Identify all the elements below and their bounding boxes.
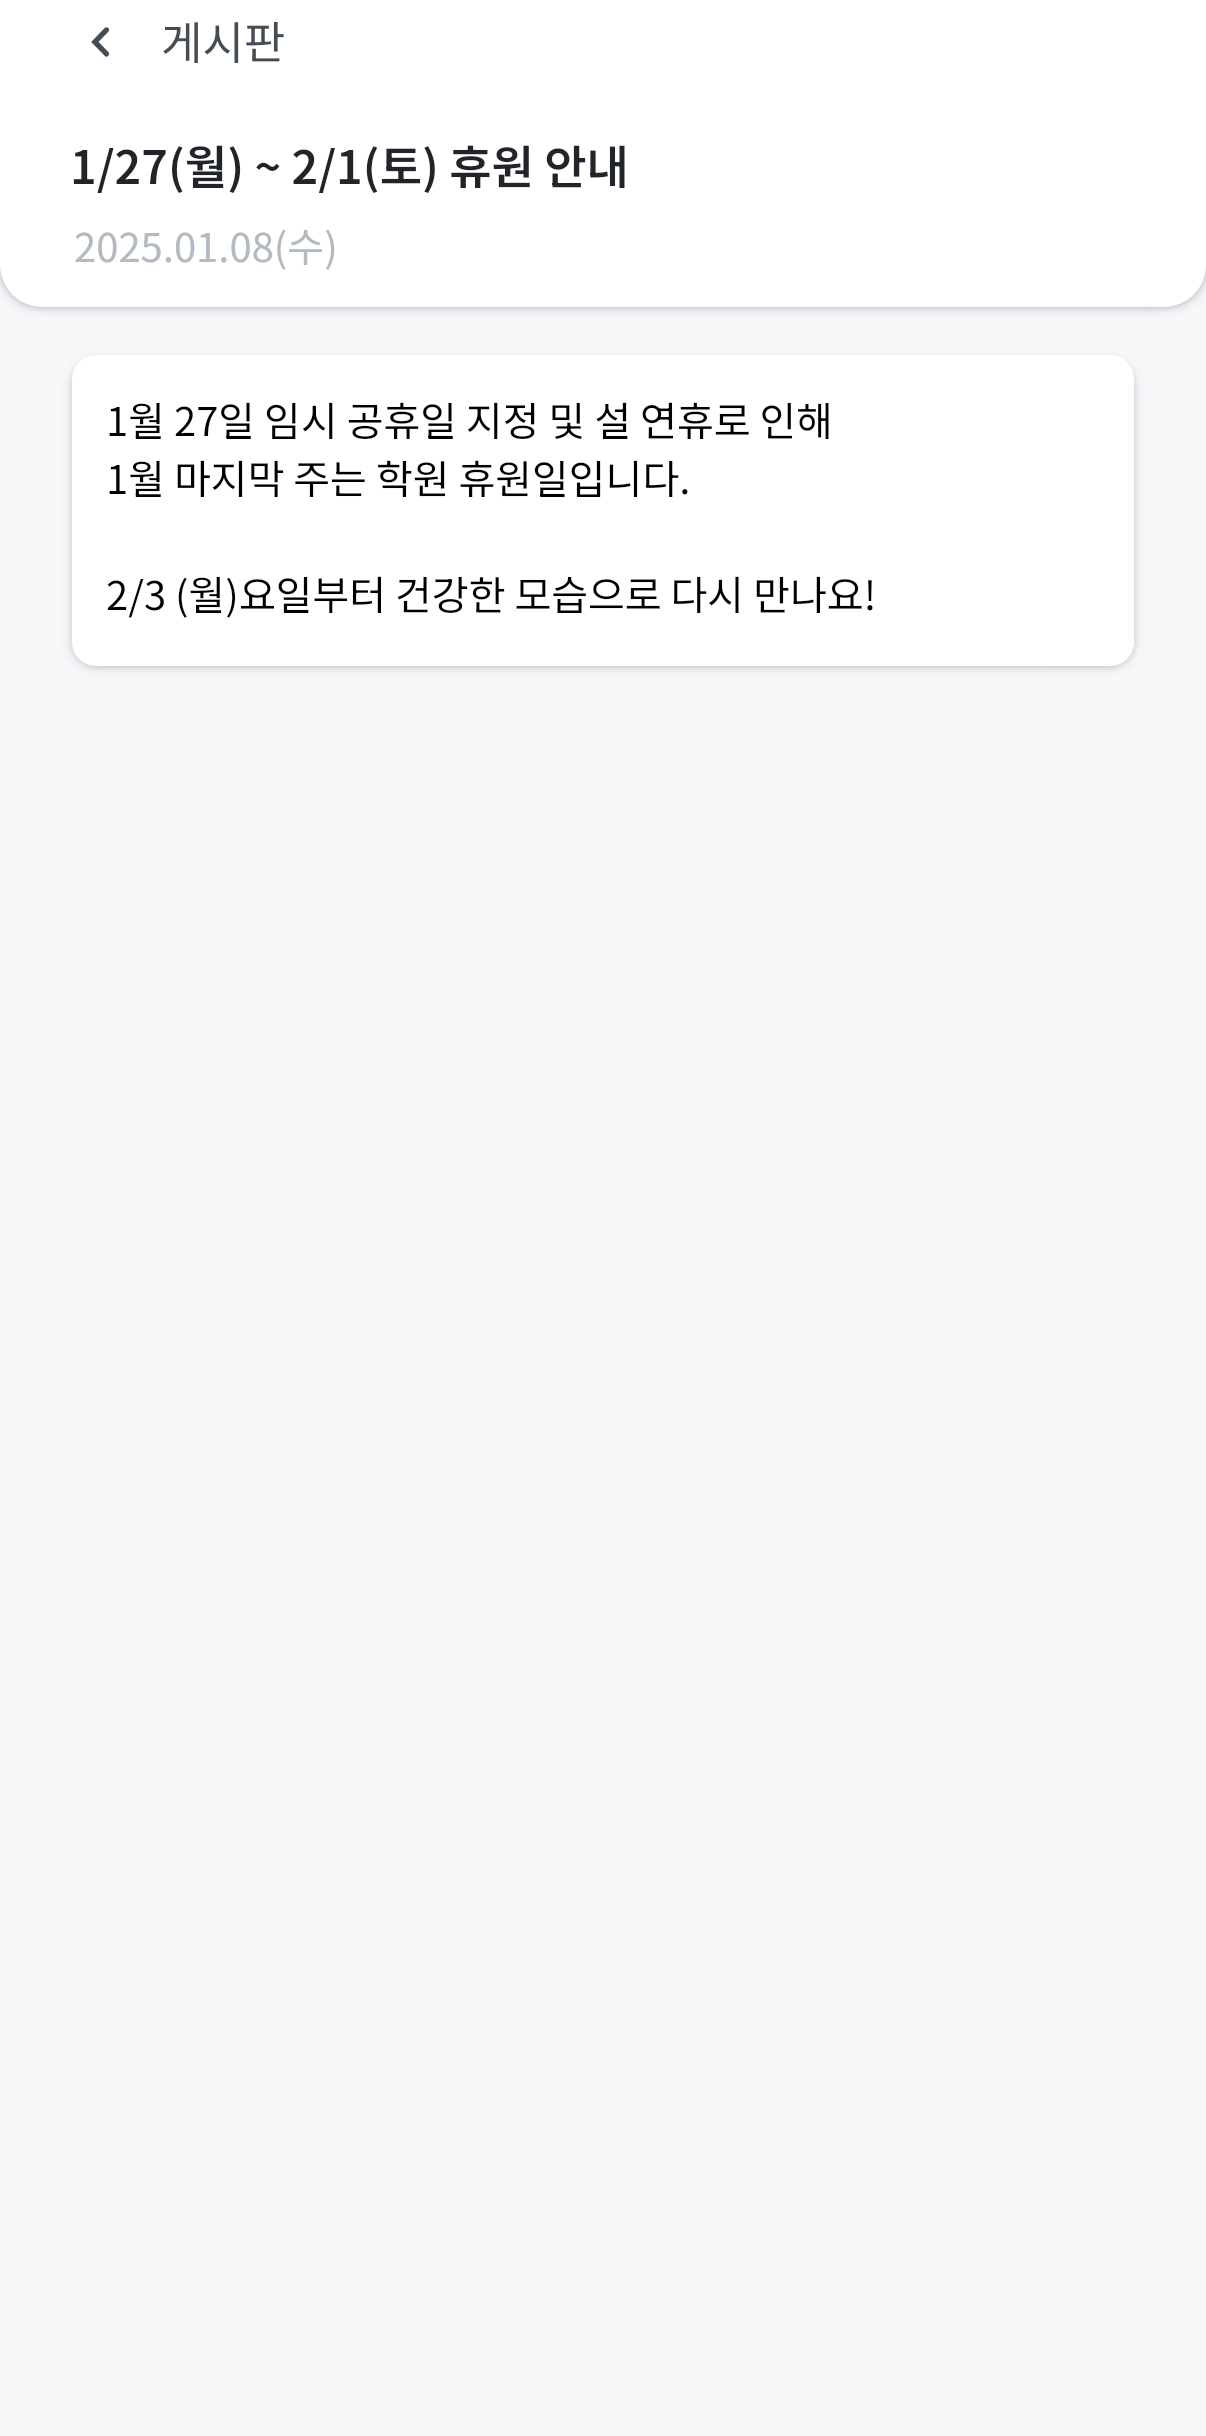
button[interactable]: 1월 27일 임시 공휴일 지정 및 설 연휴로 인해 1월 마지막 주는 학원… xyxy=(72,355,1134,666)
staticText: 1/27(월) ~ 2/1(토) 휴원 안내 xyxy=(70,131,629,198)
staticText: 게시판 xyxy=(161,7,286,72)
staticText: 1월 27일 임시 공휴일 지정 및 설 연휴로 인해 1월 마지막 주는 학원… xyxy=(106,390,877,622)
staticText: 2025.01.08(수) xyxy=(74,216,338,274)
button[interactable]: Back xyxy=(42,0,158,100)
